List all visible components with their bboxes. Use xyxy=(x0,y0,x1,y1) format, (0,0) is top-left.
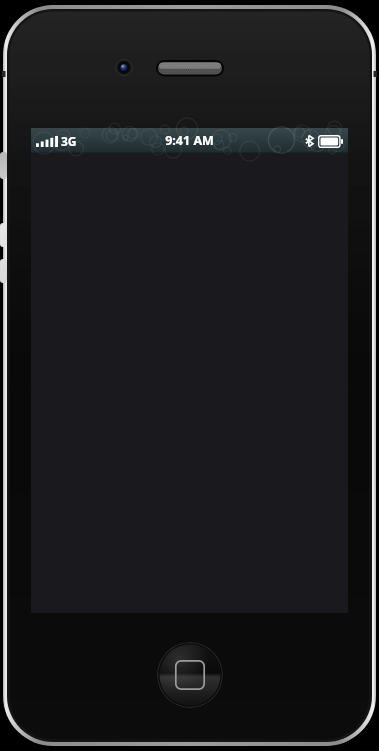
button[interactable]: Battery full xyxy=(318,135,344,148)
button[interactable]: Cellular signal 3G xyxy=(36,133,77,149)
button[interactable]: Home xyxy=(157,642,223,708)
staticText: 9:41 AM xyxy=(165,132,214,149)
button[interactable]: Bluetooth xyxy=(304,134,314,148)
staticText: 3G xyxy=(61,133,77,149)
